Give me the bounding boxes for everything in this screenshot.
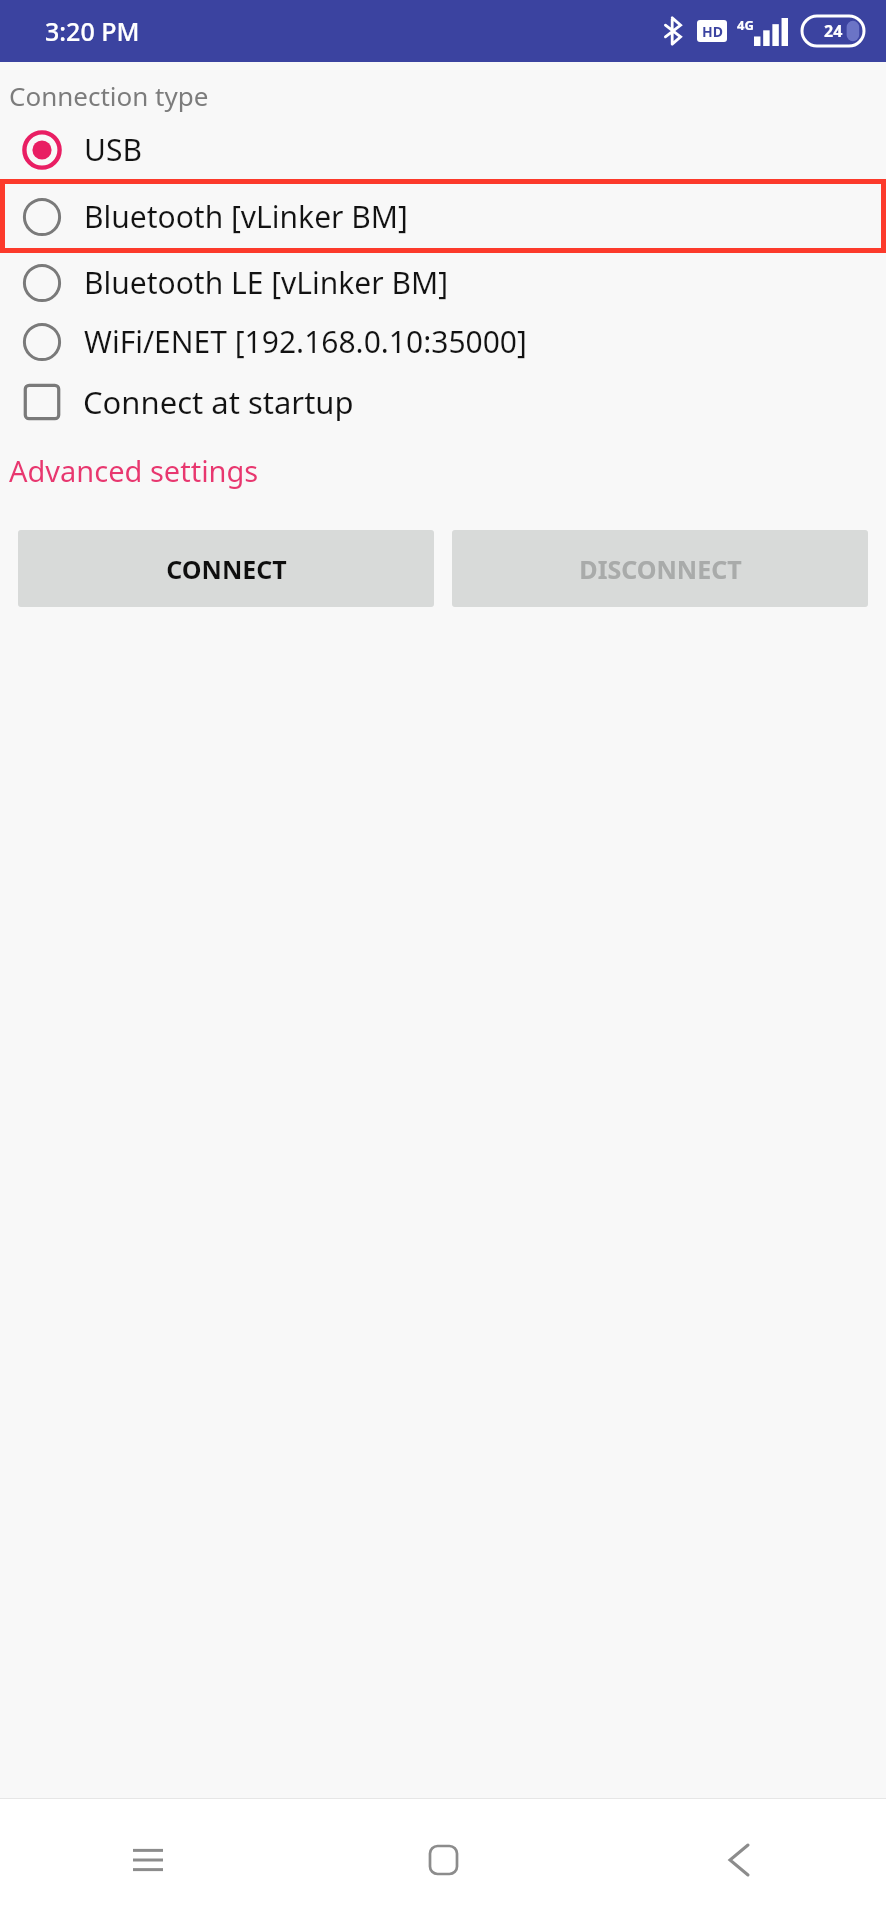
staticText: Connect at startup [83,381,354,423]
button[interactable]: WiFi/ENET [192.168.0.10:35000] [0,312,886,371]
button[interactable]: USB [0,120,886,179]
button[interactable]: CONNECT [18,530,434,607]
staticText: USB [84,129,142,170]
button[interactable]: DISCONNECT [452,530,868,607]
button[interactable]: Home [295,1799,591,1920]
staticText: 24 [824,20,843,42]
button[interactable]: Back [591,1799,886,1920]
button[interactable]: Bluetooth LE [vLinker BM] [0,253,886,312]
button[interactable]: Bluetooth [vLinker BM] [0,179,886,253]
button[interactable]: Connect at startup [0,371,886,433]
staticText: Bluetooth LE [vLinker BM] [84,262,449,303]
staticText: 3:20 PM [45,14,140,48]
button[interactable]: Recent apps [0,1799,295,1920]
staticText: WiFi/ENET [192.168.0.10:35000] [84,321,527,362]
staticText: CONNECT [166,552,287,586]
staticText: DISCONNECT [579,552,742,586]
staticText: Bluetooth [vLinker BM] [84,196,408,237]
staticText: 4G [737,16,754,34]
button[interactable]: Advanced settings [0,447,259,494]
staticText: HD [702,22,723,41]
staticText: Connection type [9,78,209,113]
